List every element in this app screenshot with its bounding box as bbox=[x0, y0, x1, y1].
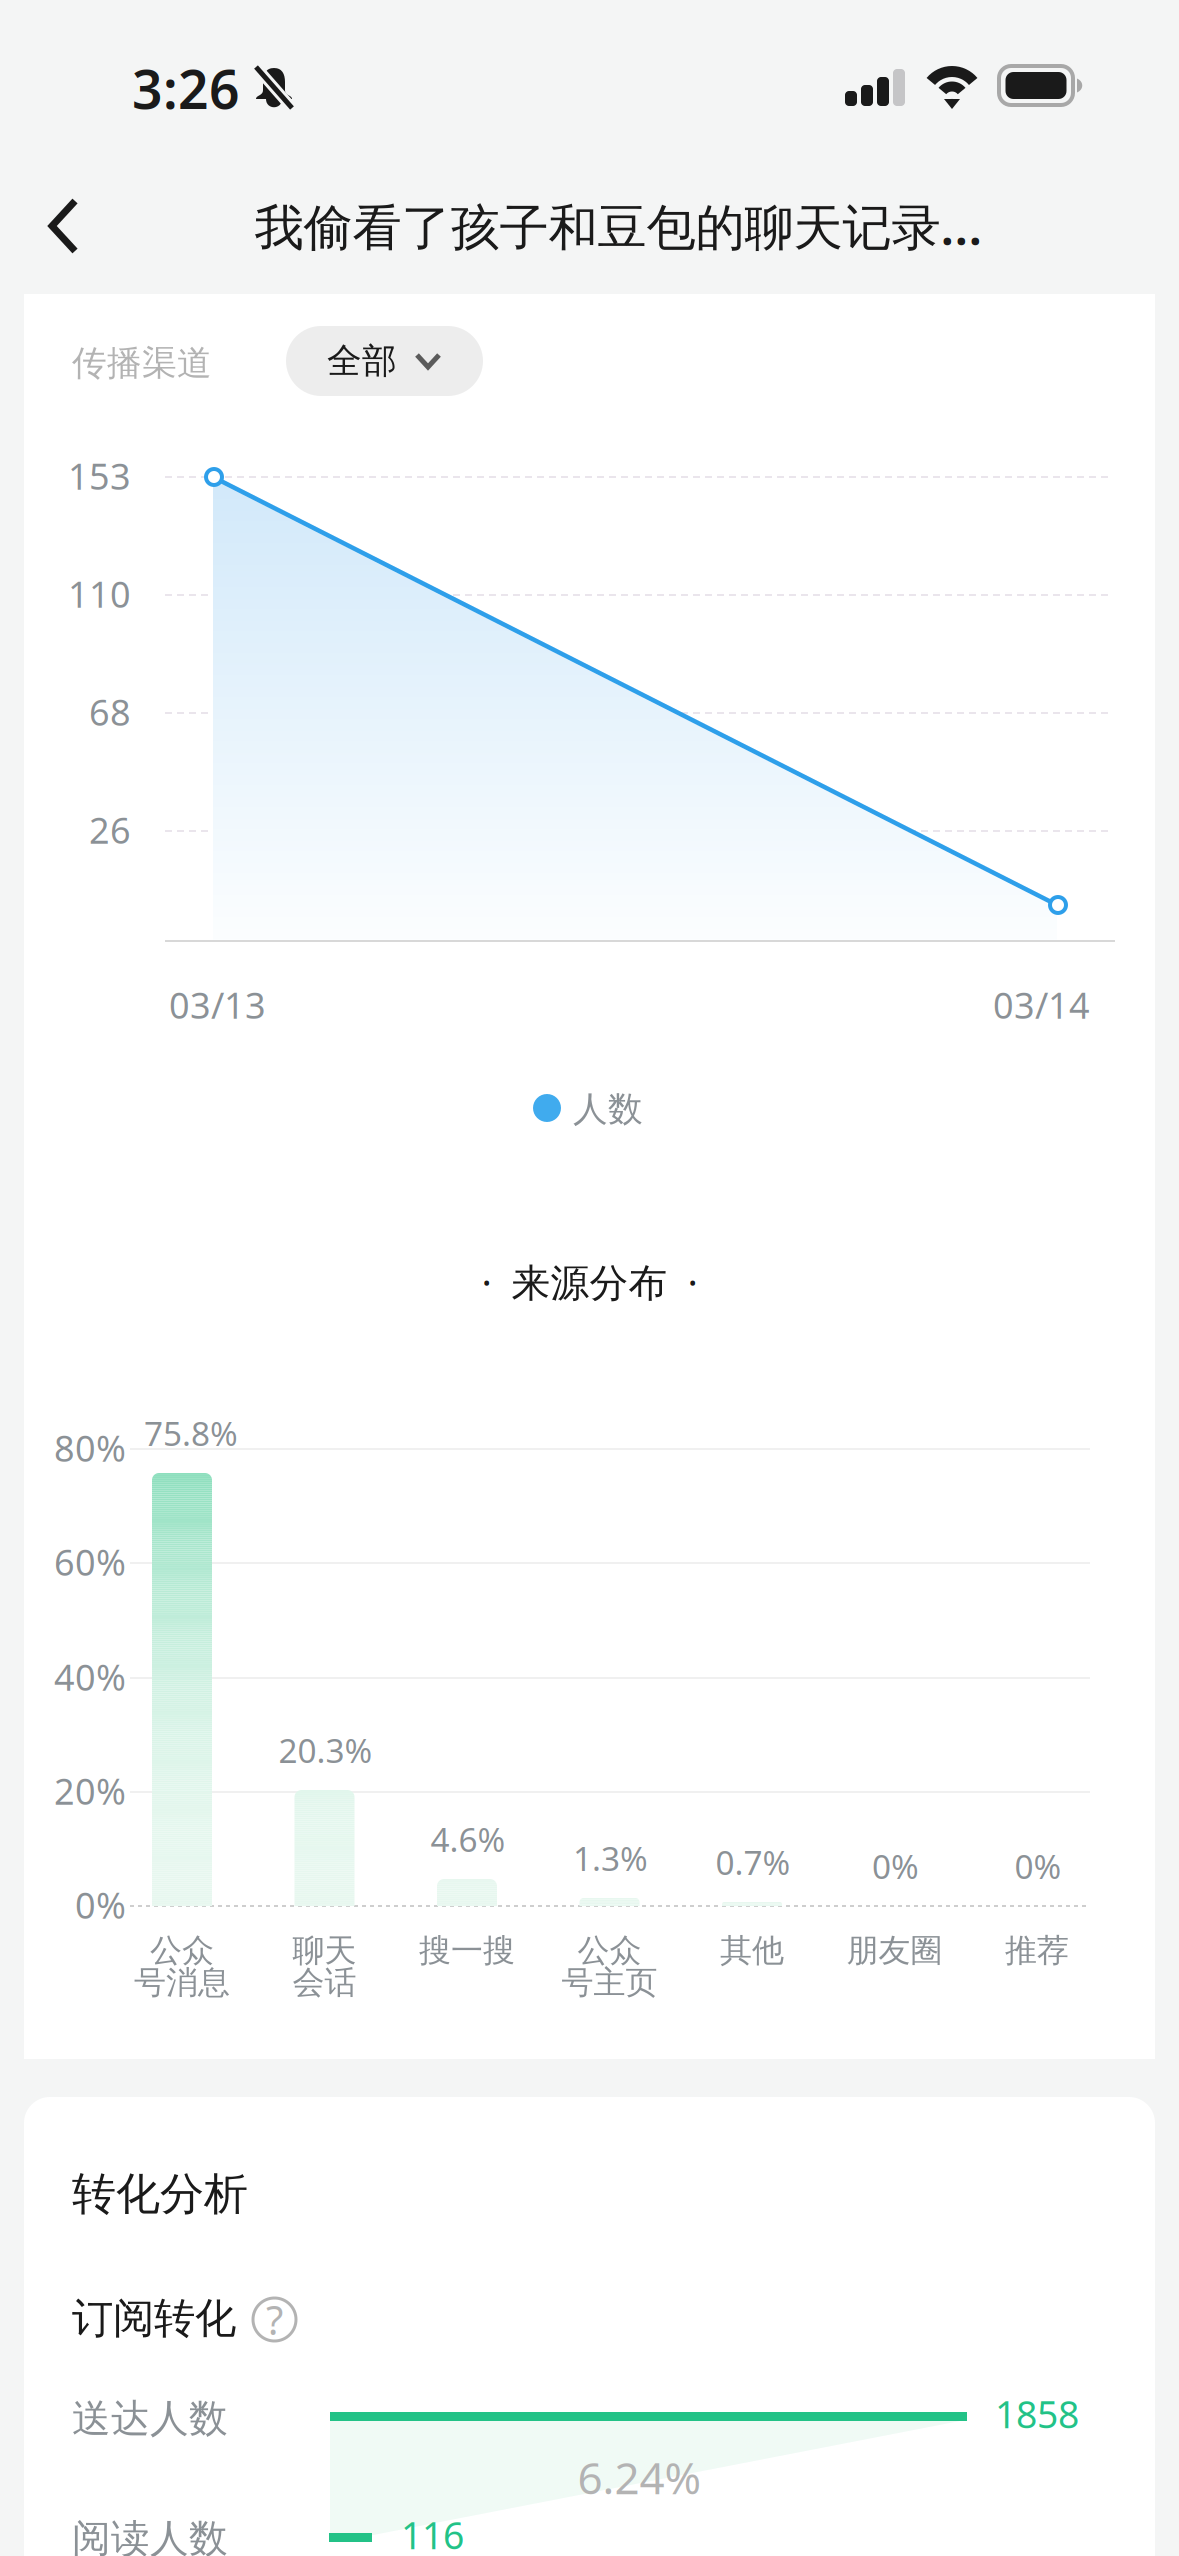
staticText: 20.3% bbox=[278, 1728, 372, 1772]
staticText: 20% bbox=[54, 1767, 126, 1815]
staticText: 送达人数 bbox=[72, 2395, 228, 2442]
staticText: 153 bbox=[68, 452, 131, 500]
staticText: 号消息 bbox=[134, 1963, 230, 2002]
staticText: 搜一搜 bbox=[419, 1931, 515, 1970]
staticText: ? bbox=[266, 2293, 283, 2346]
staticText: 6.24% bbox=[577, 2448, 701, 2506]
staticText: 我偷看了孩子和豆包的聊天记录... bbox=[254, 193, 982, 259]
staticText: 朋友圈 bbox=[846, 1931, 942, 1970]
staticText: 1.3% bbox=[573, 1836, 648, 1880]
staticText: 0% bbox=[75, 1881, 126, 1929]
staticText: · 来源分布 · bbox=[481, 1256, 697, 1307]
staticText: 75.8% bbox=[144, 1411, 238, 1455]
staticText: 转化分析 bbox=[72, 2167, 248, 2221]
staticText: 03/14 bbox=[993, 981, 1090, 1029]
staticText: 60% bbox=[54, 1538, 126, 1586]
staticText: 0% bbox=[1014, 1844, 1061, 1888]
staticText: 订阅转化 bbox=[72, 2293, 236, 2344]
staticText: 号主页 bbox=[561, 1963, 657, 2002]
staticText: 公众 bbox=[150, 1931, 214, 1970]
staticText: 传播渠道 bbox=[72, 342, 212, 385]
staticText: 人数 bbox=[573, 1088, 643, 1131]
staticText: 4.6% bbox=[430, 1817, 505, 1861]
staticText: 0% bbox=[872, 1844, 919, 1888]
staticText: 40% bbox=[54, 1653, 126, 1701]
staticText: 80% bbox=[54, 1424, 126, 1472]
staticText: 推荐 bbox=[1005, 1931, 1069, 1970]
staticText: 68 bbox=[89, 688, 131, 736]
staticText: 1858 bbox=[995, 2389, 1079, 2439]
staticText: 3:26 bbox=[132, 53, 240, 124]
staticText: 116 bbox=[401, 2510, 464, 2556]
staticText: 会话 bbox=[292, 1963, 356, 2002]
staticText: 03/13 bbox=[169, 981, 266, 1029]
staticText: 公众 bbox=[577, 1931, 641, 1970]
staticText: 聊天 bbox=[292, 1931, 356, 1970]
button[interactable]: 全部 bbox=[286, 326, 483, 396]
staticText: 0.7% bbox=[715, 1840, 790, 1884]
staticText: 其他 bbox=[720, 1931, 784, 1970]
staticText: 110 bbox=[68, 570, 131, 618]
staticText: 26 bbox=[89, 806, 131, 854]
staticText: 全部 bbox=[327, 340, 397, 382]
staticText: 阅读人数 bbox=[72, 2515, 228, 2556]
button[interactable]: Back bbox=[0, 167, 109, 285]
